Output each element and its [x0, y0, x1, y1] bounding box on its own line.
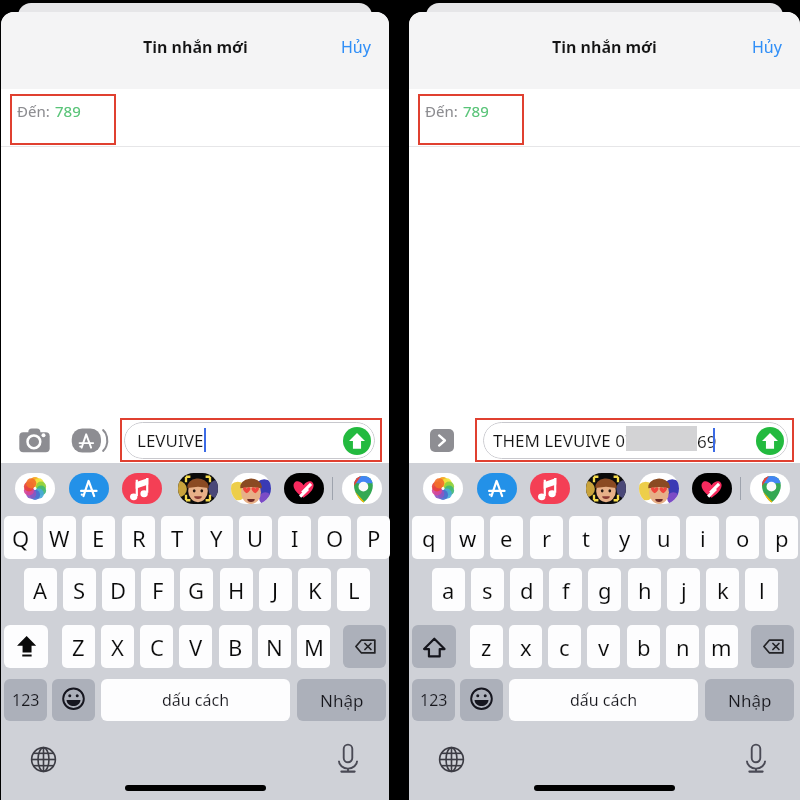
button[interactable]: Dictate: [337, 744, 359, 773]
button[interactable]: Change keyboard: [30, 746, 57, 773]
button[interactable]: c: [548, 625, 581, 668]
staticText: S: [73, 575, 86, 605]
button[interactable]: t: [569, 516, 602, 559]
button[interactable]: App icon: [122, 473, 162, 504]
button[interactable]: G: [180, 568, 213, 611]
button[interactable]: a: [432, 568, 465, 611]
button[interactable]: A: [24, 568, 57, 611]
button[interactable]: Camera: [19, 428, 50, 453]
button[interactable]: r: [530, 516, 563, 559]
button[interactable]: App icon: [586, 473, 626, 504]
button[interactable]: App icon: [178, 473, 218, 504]
button[interactable]: Change keyboard: [438, 746, 465, 773]
button[interactable]: Q: [4, 516, 37, 559]
button[interactable]: q: [412, 516, 445, 559]
button[interactable]: C: [140, 625, 173, 668]
button[interactable]: z: [470, 625, 503, 668]
staticText: N: [266, 632, 283, 662]
button[interactable]: p: [765, 516, 798, 559]
button[interactable]: Nhập: [297, 679, 386, 721]
button[interactable]: x: [509, 625, 542, 668]
button[interactable]: y: [608, 516, 641, 559]
button[interactable]: Y: [200, 516, 233, 559]
button[interactable]: dấu cách: [509, 679, 698, 721]
button[interactable]: App icon: [423, 473, 463, 504]
button[interactable]: Nhập: [705, 679, 794, 721]
button[interactable]: M: [297, 625, 330, 668]
button[interactable]: App icon: [69, 473, 109, 504]
button[interactable]: n: [666, 625, 699, 668]
button[interactable]: h: [628, 568, 661, 611]
button[interactable]: J: [259, 568, 292, 611]
button[interactable]: Hủy: [734, 28, 800, 66]
button[interactable]: 123: [412, 679, 455, 721]
button[interactable]: o: [726, 516, 759, 559]
button[interactable]: b: [627, 625, 660, 668]
button[interactable]: App icon: [477, 473, 517, 504]
button[interactable]: Emoji: [460, 679, 503, 721]
button[interactable]: i: [686, 516, 719, 559]
button[interactable]: App icon: [284, 473, 324, 504]
button[interactable]: e: [490, 516, 523, 559]
staticText: B: [228, 632, 243, 662]
button[interactable]: App icon: [639, 473, 679, 504]
button[interactable]: App icon: [692, 473, 732, 504]
button[interactable]: App Store: [71, 428, 108, 453]
button[interactable]: Shift: [4, 625, 48, 668]
button[interactable]: Emoji: [52, 679, 95, 721]
button[interactable]: s: [471, 568, 504, 611]
button[interactable]: N: [258, 625, 291, 668]
button[interactable]: Send: [756, 427, 784, 455]
button[interactable]: U: [239, 516, 272, 559]
button[interactable]: D: [102, 568, 135, 611]
button[interactable]: m: [705, 625, 738, 668]
button[interactable]: k: [706, 568, 739, 611]
button[interactable]: K: [298, 568, 331, 611]
button[interactable]: d: [510, 568, 543, 611]
button[interactable]: R: [122, 516, 155, 559]
staticText: x: [520, 632, 532, 662]
button[interactable]: V: [179, 625, 212, 668]
button[interactable]: B: [219, 625, 252, 668]
button[interactable]: App icon: [530, 473, 570, 504]
button[interactable]: Z: [62, 625, 95, 668]
button[interactable]: Dictate: [745, 744, 767, 773]
staticText: t: [582, 523, 590, 553]
button[interactable]: Maps: [342, 473, 382, 504]
button[interactable]: App icon: [15, 473, 55, 504]
button[interactable]: j: [667, 568, 700, 611]
button[interactable]: Show apps: [430, 429, 454, 452]
staticText: M: [304, 632, 324, 662]
button[interactable]: App icon: [231, 473, 271, 504]
button[interactable]: H: [220, 568, 253, 611]
button[interactable]: W: [43, 516, 76, 559]
button[interactable]: Maps: [750, 473, 790, 504]
button[interactable]: Shift: [412, 625, 456, 668]
button[interactable]: Hủy: [323, 28, 389, 66]
button[interactable]: Backspace: [751, 625, 794, 668]
button[interactable]: Backspace: [343, 625, 386, 668]
button[interactable]: S: [63, 568, 96, 611]
button[interactable]: w: [451, 516, 484, 559]
button[interactable]: THEM LEVUIVE 07: [483, 422, 788, 459]
button[interactable]: g: [588, 568, 621, 611]
button[interactable]: v: [587, 625, 620, 668]
staticText: X: [111, 632, 124, 662]
button[interactable]: L: [337, 568, 370, 611]
button[interactable]: X: [101, 625, 134, 668]
button[interactable]: O: [318, 516, 351, 559]
button[interactable]: f: [549, 568, 582, 611]
button[interactable]: dấu cách: [101, 679, 290, 721]
staticText: Đến:: [17, 101, 50, 121]
staticText: R: [132, 523, 146, 553]
button[interactable]: 123: [4, 679, 47, 721]
button[interactable]: LEVUIVE: [124, 422, 375, 459]
button[interactable]: I: [278, 516, 311, 559]
button[interactable]: F: [141, 568, 174, 611]
button[interactable]: E: [82, 516, 115, 559]
button[interactable]: P: [357, 516, 390, 559]
button[interactable]: l: [745, 568, 778, 611]
button[interactable]: T: [161, 516, 194, 559]
button[interactable]: u: [647, 516, 680, 559]
button[interactable]: Send: [343, 427, 371, 455]
